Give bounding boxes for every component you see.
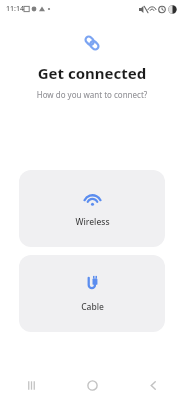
button[interactable]: Home: [62, 370, 123, 400]
staticText: Wireless: [75, 216, 110, 228]
staticText: Cable: [81, 301, 104, 313]
staticText: Get connected: [0, 63, 184, 83]
button[interactable]: Recent apps: [0, 370, 62, 400]
staticText: 11:14: [6, 4, 24, 14]
button[interactable]: Connect wirelessly: [19, 170, 165, 247]
button[interactable]: Back: [123, 370, 184, 400]
staticText: How do you want to connect?: [0, 89, 184, 100]
button[interactable]: Connect with cable: [19, 255, 165, 332]
